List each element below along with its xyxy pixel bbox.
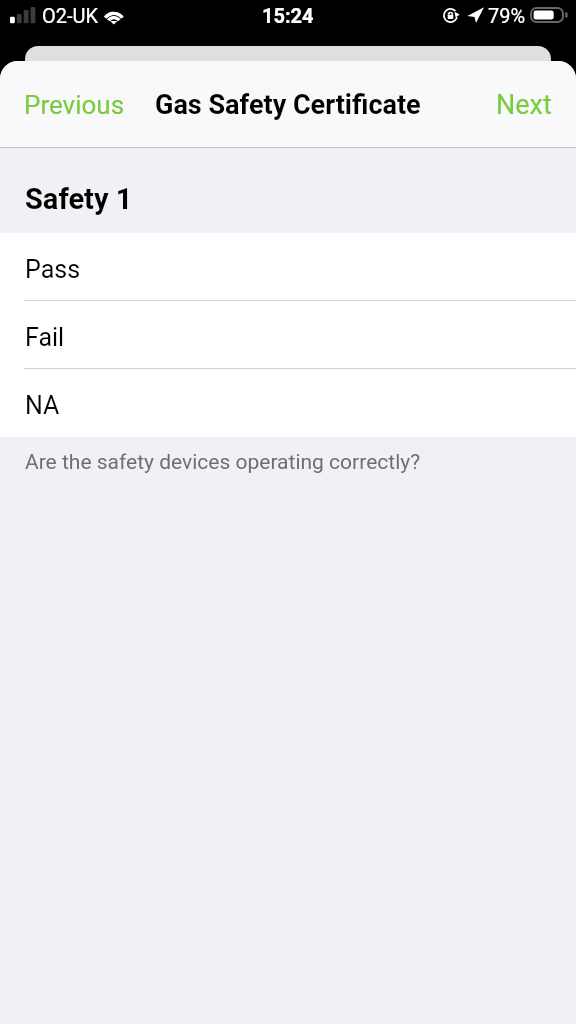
staticText: Next: [496, 89, 552, 121]
staticText: 79%: [488, 4, 526, 27]
button[interactable]: Next: [472, 75, 576, 135]
button[interactable]: Previous: [0, 76, 149, 134]
button[interactable]: Pass: [0, 233, 576, 301]
staticText: O2-UK: [42, 4, 99, 27]
staticText: NA: [25, 391, 60, 420]
staticText: Previous: [24, 90, 125, 120]
staticText: 15:24: [262, 4, 314, 27]
button[interactable]: NA: [0, 369, 576, 437]
staticText: Are the safety devices operating correct…: [25, 450, 421, 475]
staticText: Gas Safety Certificate: [155, 89, 421, 121]
staticText: Fail: [25, 323, 65, 352]
button[interactable]: Fail: [0, 301, 576, 369]
staticText: Pass: [25, 255, 81, 284]
staticText: Safety 1: [25, 182, 133, 216]
